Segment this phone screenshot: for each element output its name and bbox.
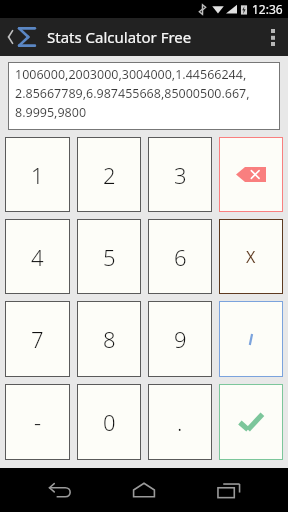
- button[interactable]: Back: [35, 468, 85, 512]
- staticText: X: [246, 246, 256, 268]
- staticText: 4: [31, 242, 44, 272]
- button[interactable]: 9: [148, 301, 212, 377]
- button[interactable]: Recent apps: [204, 468, 254, 512]
- button[interactable]: Enter: [219, 384, 283, 460]
- staticText: 2: [103, 160, 116, 190]
- button[interactable]: .: [148, 384, 212, 460]
- button[interactable]: 2: [77, 137, 141, 212]
- staticText: 1: [31, 160, 44, 190]
- button[interactable]: Navigate up: [4, 18, 41, 56]
- staticText: 8: [103, 324, 116, 354]
- staticText: Stats Calculator Free: [47, 27, 192, 47]
- staticText: 0: [103, 407, 116, 437]
- button[interactable]: Backspace: [219, 137, 283, 212]
- button[interactable]: 1: [5, 137, 70, 212]
- button[interactable]: 1006000,2003000,3004000,1.44566244, 2.85…: [8, 62, 280, 130]
- staticText: 5: [103, 242, 116, 272]
- button[interactable]: 5: [77, 219, 141, 294]
- button[interactable]: 3: [148, 137, 212, 212]
- staticText: 9: [174, 324, 187, 354]
- button[interactable]: Home: [119, 468, 169, 512]
- staticText: 7: [31, 324, 44, 354]
- button[interactable]: 4: [5, 219, 70, 294]
- button[interactable]: 0: [77, 384, 141, 460]
- button[interactable]: 7: [5, 301, 70, 377]
- button[interactable]: 8: [77, 301, 141, 377]
- staticText: .: [177, 407, 183, 437]
- button[interactable]: -: [5, 384, 70, 460]
- staticText: -: [34, 407, 42, 437]
- staticText: 6: [174, 242, 187, 272]
- staticText: 1006000,2003000,3004000,1.44566244, 2.85…: [15, 66, 250, 120]
- button[interactable]: Multiply: [219, 219, 283, 294]
- staticText: 12:36: [252, 1, 283, 17]
- button[interactable]: 6: [148, 219, 212, 294]
- button[interactable]: Comma: [219, 301, 283, 377]
- staticText: 3: [174, 160, 187, 190]
- button[interactable]: More options: [258, 18, 288, 56]
